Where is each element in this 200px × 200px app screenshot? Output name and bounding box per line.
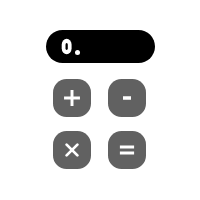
button[interactable]: Equals bbox=[108, 131, 146, 169]
button[interactable]: Subtract bbox=[108, 79, 146, 117]
button[interactable]: Multiply bbox=[53, 131, 91, 169]
button[interactable]: Display, 0. bbox=[46, 30, 155, 63]
button[interactable]: Add bbox=[53, 79, 91, 117]
